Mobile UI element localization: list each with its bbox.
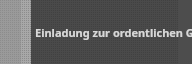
button[interactable]: Einladung zur ordentlichen GV	[0, 0, 192, 64]
staticText: Einladung zur ordentlichen GV	[35, 25, 192, 40]
